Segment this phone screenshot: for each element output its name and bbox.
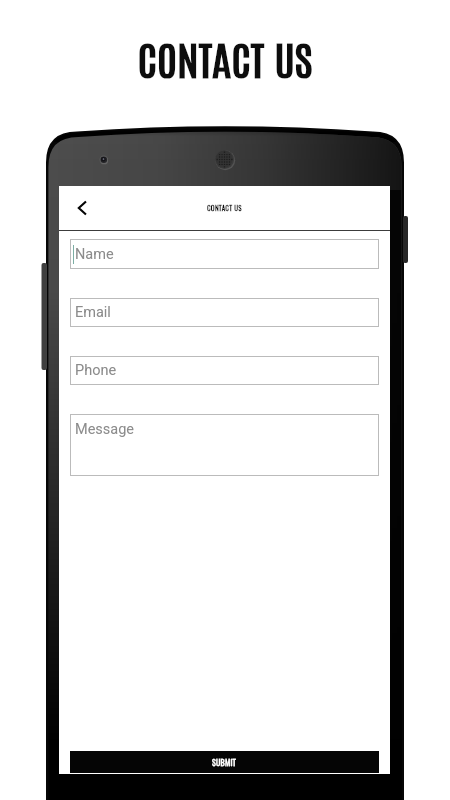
staticText: SUBMIT	[212, 756, 237, 768]
staticText: Message	[75, 421, 135, 438]
button[interactable]: Back	[65, 193, 95, 223]
button[interactable]: SUBMIT	[70, 751, 379, 773]
button[interactable]: Phone	[70, 356, 379, 385]
staticText: CONTACT US	[0, 32, 450, 83]
staticText: Email	[75, 304, 111, 321]
button[interactable]: Message	[70, 414, 379, 476]
button[interactable]: Name	[70, 239, 379, 269]
staticText: CONTACT US	[207, 203, 242, 213]
staticText: Name	[75, 246, 114, 263]
button[interactable]: Email	[70, 298, 379, 327]
staticText: Phone	[75, 362, 117, 379]
